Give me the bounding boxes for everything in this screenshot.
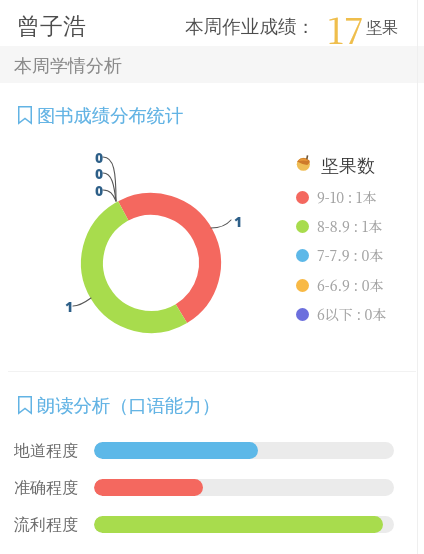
button[interactable]: 本周学情分析 xyxy=(0,46,424,83)
button[interactable]: 9-10 : 1本 xyxy=(296,186,377,208)
staticText: 坚果数 xyxy=(321,155,375,178)
button[interactable]: 6-6.9 : 0本 xyxy=(296,274,384,296)
staticText: 坚果 xyxy=(366,18,398,38)
button[interactable]: 书签 xyxy=(18,101,184,128)
staticText: 0 xyxy=(95,181,104,200)
staticText: 1 xyxy=(234,212,243,231)
staticText: 1 xyxy=(65,297,74,316)
staticText: 6以下 : 0本 xyxy=(317,304,387,324)
button[interactable]: 6以下 : 0本 xyxy=(296,303,387,325)
button[interactable]: 准确程度 xyxy=(0,478,424,496)
button[interactable]: 书签 xyxy=(18,391,220,418)
other: 坚果 xyxy=(296,155,312,171)
button[interactable]: 8-8.9 : 1本 xyxy=(296,215,383,237)
staticText: 流利程度 xyxy=(14,515,78,533)
staticText: 0 xyxy=(95,164,104,183)
button[interactable]: 7-7.9 : 0本 xyxy=(296,244,384,266)
staticText: 曾子浩 xyxy=(17,12,86,41)
staticText: 0 xyxy=(95,148,104,167)
other: 书签 xyxy=(18,106,32,124)
button[interactable]: 坚果 xyxy=(296,155,312,171)
other: 书签 xyxy=(18,396,32,414)
staticText: 7-7.9 : 0本 xyxy=(317,245,384,265)
staticText: 朗读分析（口语能力） xyxy=(37,394,220,417)
staticText: 9-10 : 1本 xyxy=(317,187,377,207)
staticText: 本周学情分析 xyxy=(14,55,122,78)
other: 图书成绩分布环形图 xyxy=(81,193,221,333)
button[interactable]: 地道程度 xyxy=(0,441,424,459)
staticText: 准确程度 xyxy=(14,478,78,496)
staticText: 6-6.9 : 0本 xyxy=(317,275,384,295)
staticText: 地道程度 xyxy=(14,441,78,459)
staticText: 图书成绩分布统计 xyxy=(37,104,184,127)
staticText: 本周作业成绩： xyxy=(185,15,316,38)
staticText: 8-8.9 : 1本 xyxy=(317,216,383,236)
staticText: 17 xyxy=(327,3,364,55)
button[interactable]: 流利程度 xyxy=(0,515,424,533)
